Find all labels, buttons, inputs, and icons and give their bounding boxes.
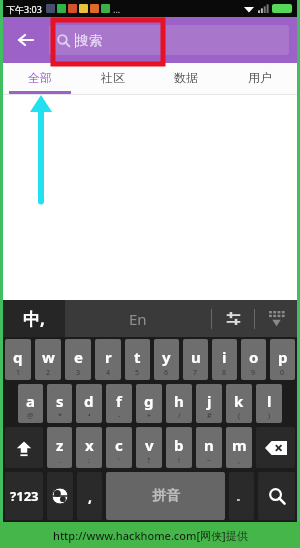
button[interactable]: d bbox=[76, 384, 102, 423]
button[interactable]: x bbox=[76, 427, 102, 468]
staticText: En bbox=[129, 309, 147, 329]
button[interactable]: p bbox=[270, 339, 295, 380]
staticText: / bbox=[178, 411, 181, 421]
button[interactable]: En bbox=[65, 300, 211, 337]
button[interactable]: g bbox=[136, 384, 162, 423]
staticText: b bbox=[174, 435, 184, 455]
staticText: ?123 bbox=[10, 487, 39, 505]
button[interactable]: m bbox=[226, 427, 252, 468]
button[interactable]: c bbox=[106, 427, 132, 468]
staticText: z bbox=[56, 435, 64, 455]
staticText: : bbox=[88, 456, 90, 466]
button[interactable]: Keyboard settings bbox=[212, 300, 254, 337]
button[interactable]: 社区 bbox=[76, 63, 149, 91]
button[interactable]: Change language bbox=[47, 472, 73, 520]
staticText: 9 bbox=[251, 368, 256, 378]
staticText: . bbox=[59, 456, 61, 466]
staticText: c bbox=[115, 435, 123, 455]
button[interactable]: s bbox=[47, 384, 72, 423]
staticText: - bbox=[118, 411, 121, 421]
staticText: q bbox=[13, 347, 23, 367]
staticText: y bbox=[162, 347, 171, 367]
button[interactable]: l bbox=[256, 384, 282, 423]
staticText: ) bbox=[268, 411, 271, 421]
button[interactable]: t bbox=[125, 339, 150, 380]
staticText: 拼音 bbox=[152, 487, 180, 505]
button[interactable]: Backspace bbox=[256, 427, 295, 468]
staticText: d bbox=[84, 391, 94, 411]
staticText: 8 bbox=[222, 368, 227, 378]
staticText: 4 bbox=[106, 368, 111, 378]
staticText: 中, bbox=[23, 307, 45, 330]
staticText: 搜索 bbox=[76, 32, 102, 48]
staticText: s bbox=[56, 391, 64, 411]
staticText: http://www.hackhome.com[网侠]提供 bbox=[53, 528, 248, 543]
staticText: j bbox=[207, 391, 212, 411]
staticText: 全部 bbox=[28, 70, 52, 85]
staticText: 1 bbox=[16, 368, 21, 378]
button[interactable]: 全部 bbox=[3, 63, 76, 91]
button[interactable]: n bbox=[196, 427, 222, 468]
staticText: # bbox=[207, 411, 212, 421]
staticText: w bbox=[42, 347, 55, 367]
button[interactable]: a bbox=[18, 384, 43, 423]
staticText: k bbox=[234, 391, 244, 411]
staticText: + bbox=[147, 411, 152, 421]
button[interactable]: h bbox=[166, 384, 192, 423]
staticText: v bbox=[145, 435, 154, 455]
staticText: 3 bbox=[76, 368, 81, 378]
staticText: p bbox=[278, 347, 288, 367]
staticText: @ bbox=[27, 411, 34, 421]
staticText: g bbox=[144, 391, 154, 411]
button[interactable]: f bbox=[106, 384, 132, 423]
button[interactable]: Search bbox=[258, 472, 295, 520]
button[interactable]: q bbox=[5, 339, 31, 380]
button[interactable]: Hide keyboard bbox=[255, 300, 297, 337]
button[interactable]: 用户 bbox=[223, 63, 297, 91]
staticText: ( bbox=[238, 411, 241, 421]
button[interactable]: o bbox=[241, 339, 266, 380]
button[interactable]: 拼音 bbox=[106, 472, 225, 520]
button[interactable]: y bbox=[154, 339, 179, 380]
button[interactable]: 中, bbox=[3, 300, 65, 337]
button[interactable]: b bbox=[166, 427, 192, 468]
staticText: 7 bbox=[193, 368, 198, 378]
button[interactable]: , bbox=[77, 472, 102, 520]
staticText: 。 bbox=[236, 489, 247, 503]
button[interactable]: z bbox=[47, 427, 72, 468]
button[interactable]: 搜索 bbox=[49, 25, 289, 55]
staticText: l bbox=[267, 391, 272, 411]
staticText: t bbox=[134, 347, 141, 367]
staticText: h bbox=[174, 391, 184, 411]
staticText: x bbox=[85, 435, 94, 455]
button[interactable]: k bbox=[226, 384, 252, 423]
button[interactable]: 。 bbox=[229, 472, 254, 520]
staticText: 5 bbox=[135, 368, 140, 378]
staticText: u bbox=[191, 347, 201, 367]
staticText: , bbox=[238, 456, 240, 466]
staticText: m bbox=[232, 435, 247, 455]
button[interactable]: e bbox=[65, 339, 91, 380]
button[interactable]: u bbox=[183, 339, 208, 380]
staticText: n bbox=[204, 435, 214, 455]
staticText: a bbox=[26, 391, 35, 411]
staticText: 数据 bbox=[174, 70, 198, 85]
staticText: ? bbox=[147, 456, 151, 466]
button[interactable]: 数据 bbox=[149, 63, 223, 91]
button[interactable]: j bbox=[196, 384, 222, 423]
button[interactable]: r bbox=[95, 339, 121, 380]
button[interactable]: Shift bbox=[5, 427, 43, 468]
staticText: ~ bbox=[207, 456, 212, 466]
staticText: 用户 bbox=[248, 70, 272, 85]
button[interactable]: v bbox=[136, 427, 162, 468]
staticText: 6 bbox=[164, 368, 169, 378]
button[interactable]: i bbox=[212, 339, 237, 380]
button[interactable]: w bbox=[35, 339, 61, 380]
button[interactable]: ?123 bbox=[5, 472, 43, 520]
button[interactable]: Back bbox=[3, 17, 49, 63]
staticText: * bbox=[58, 411, 62, 421]
staticText: , bbox=[88, 487, 92, 506]
staticText: 下午3:03 bbox=[6, 3, 42, 15]
staticText: 2 bbox=[46, 368, 51, 378]
staticText: • bbox=[88, 411, 91, 421]
